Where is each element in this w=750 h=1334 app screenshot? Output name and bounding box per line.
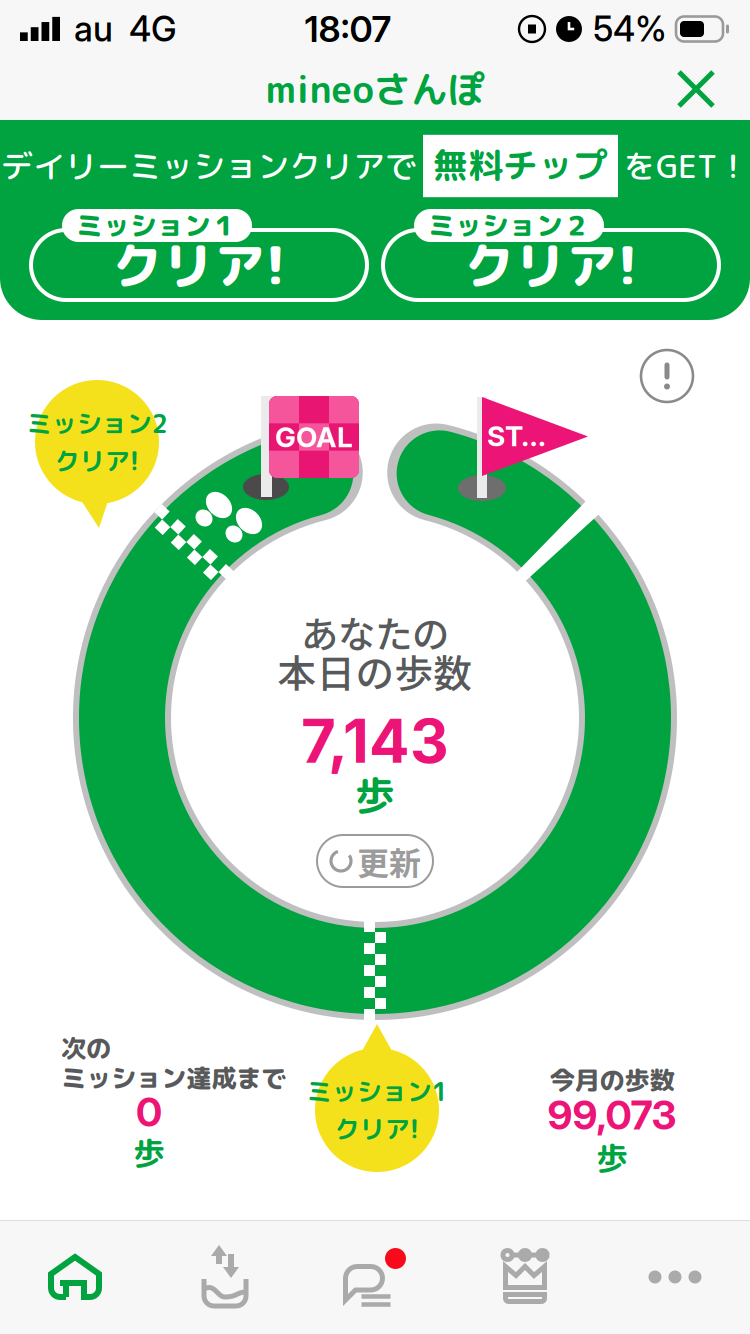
staticText: クリア! [112,230,286,300]
staticText: 99,073 [547,1091,676,1139]
button[interactable]: クリア! [383,209,719,300]
staticText: クリア! [334,1111,419,1146]
staticText: ミッション２ [428,207,590,244]
staticText: 歩 [596,1136,628,1180]
staticText: 本日の歩数 [277,643,472,699]
staticText: 次の [61,1030,111,1066]
staticText: 歩 [133,1131,165,1175]
button[interactable]: Messages [300,1220,450,1334]
staticText: ミッション達成まで [61,1060,286,1096]
button[interactable]: 更新 [305,833,445,889]
button[interactable]: Rank [450,1220,600,1334]
staticText: 更新 [357,838,421,884]
staticText: クリア! [54,443,139,478]
staticText: あなたの [301,605,449,659]
button[interactable]: Information [637,346,697,406]
staticText: 4G [129,8,177,50]
button[interactable]: More [600,1220,750,1334]
staticText: ミッション1 [306,1074,447,1109]
staticText: 今月の歩数 [549,1062,674,1098]
staticText: 18:07 [304,7,391,51]
staticText: 歩 [355,767,395,823]
button[interactable]: クリア! [31,209,367,300]
staticText: クリア! [464,230,638,300]
button[interactable]: Exchange [150,1220,300,1334]
staticText: 0 [136,1088,162,1136]
staticText: 7,143 [301,705,449,777]
staticText: をGET！ [624,144,749,188]
staticText: ミッション2 [26,406,167,441]
staticText: ミッション１ [76,207,238,244]
staticText: au [74,8,113,50]
staticText: デイリーミッションクリアで [1,144,417,188]
button[interactable]: Home [0,1220,150,1334]
staticText: 54% [593,8,667,50]
staticText: 無料チップ [433,141,608,189]
staticText: mineoさんぽ [265,63,484,115]
button[interactable]: Close [660,58,732,120]
staticText: GOAL [275,420,353,454]
staticText: START [487,419,565,453]
